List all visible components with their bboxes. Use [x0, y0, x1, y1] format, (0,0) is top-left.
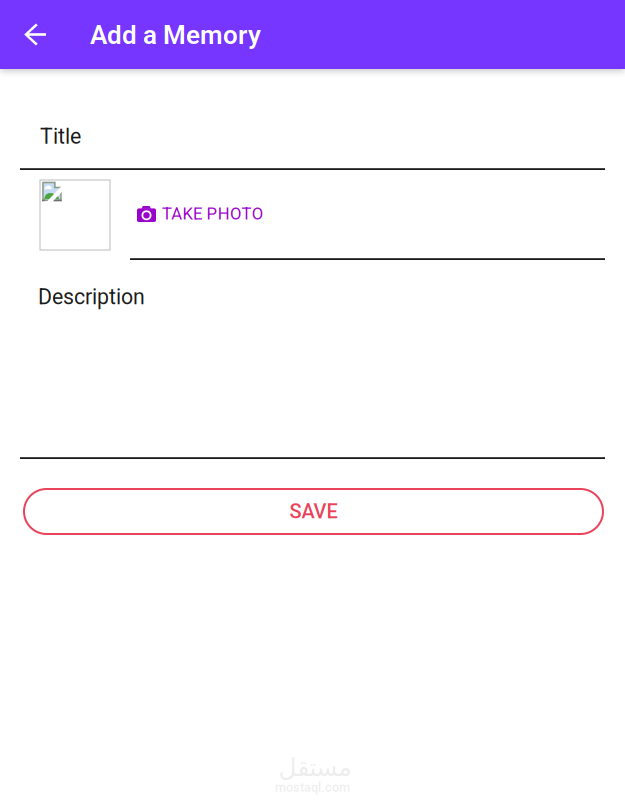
- button[interactable]: Back: [0, 0, 70, 69]
- button[interactable]: SAVE: [24, 489, 603, 534]
- staticText: مستقل: [278, 753, 351, 782]
- button[interactable]: Description: [20, 275, 605, 459]
- staticText: TAKE PHOTO: [162, 204, 263, 223]
- button[interactable]: TAKE PHOTO: [137, 194, 275, 234]
- button[interactable]: Title: [20, 110, 605, 170]
- staticText: SAVE: [289, 500, 337, 523]
- staticText: Add a Memory: [90, 20, 261, 50]
- staticText: Description: [38, 284, 145, 309]
- staticText: mostaql.com: [275, 780, 350, 795]
- staticText: Title: [40, 124, 81, 149]
